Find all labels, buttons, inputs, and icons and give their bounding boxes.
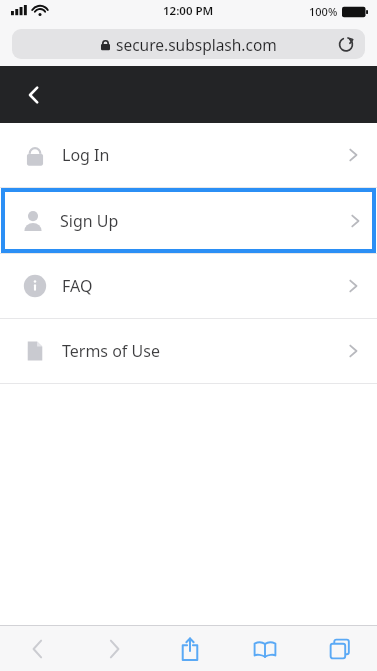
button[interactable]: Sign Up: [1, 188, 376, 253]
button[interactable]: Log In: [0, 123, 377, 187]
staticText: secure.subsplash.com: [116, 34, 277, 55]
staticText: FAQ: [62, 275, 93, 297]
button[interactable]: Share: [152, 626, 227, 671]
staticText: Log In: [62, 144, 110, 166]
staticText: 100%: [309, 4, 338, 19]
staticText: Terms of Use: [62, 340, 160, 362]
button[interactable]: Tabs: [302, 626, 377, 671]
button[interactable]: FAQ: [0, 254, 377, 318]
button[interactable]: Terms of Use: [0, 319, 377, 383]
button[interactable]: Back: [16, 77, 52, 113]
button[interactable]: Reload page: [333, 31, 359, 57]
button[interactable]: Back: [0, 626, 76, 671]
button[interactable]: Bookmarks: [227, 626, 302, 671]
staticText: 12:00 PM: [163, 3, 214, 19]
button[interactable]: secure.subsplash.com: [12, 29, 365, 59]
staticText: Sign Up: [60, 210, 119, 232]
button[interactable]: Forward: [76, 626, 152, 671]
